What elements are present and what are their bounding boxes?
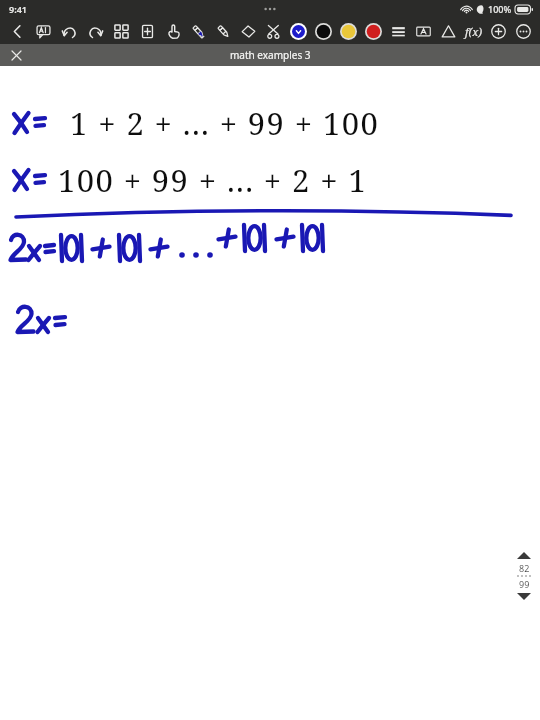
- button[interactable]: More options: [511, 18, 536, 44]
- button[interactable]: Page grid: [108, 18, 134, 44]
- button[interactable]: Yellow colour: [336, 18, 361, 44]
- button[interactable]: Red colour: [361, 18, 386, 44]
- button[interactable]: Math tools: [461, 18, 486, 44]
- staticText: 99: [519, 578, 530, 590]
- button[interactable]: Stroke width: [386, 18, 411, 44]
- button[interactable]: Close note: [0, 44, 32, 66]
- staticText: 82: [519, 562, 530, 574]
- button[interactable]: Eraser: [236, 18, 261, 44]
- staticText: math examples 3: [230, 48, 311, 62]
- button[interactable]: Blue colour: [286, 18, 311, 44]
- button[interactable]: Pointer: [160, 18, 186, 44]
- button[interactable]: Add: [486, 18, 511, 44]
- staticText: f(x): [465, 24, 483, 39]
- button[interactable]: Pen: [186, 18, 211, 44]
- button[interactable]: Lasso select: [261, 18, 286, 44]
- button[interactable]: Back: [4, 18, 30, 44]
- button[interactable]: Shapes: [436, 18, 461, 44]
- button[interactable]: Highlighter: [211, 18, 236, 44]
- staticText: 100 + 99 + ... + 2 + 1: [58, 159, 368, 201]
- button[interactable]: Insert page: [134, 18, 160, 44]
- button[interactable]: AI assistant: [30, 18, 56, 44]
- button[interactable]: Page 82 of 99: [512, 552, 536, 600]
- staticText: 100%: [488, 3, 512, 15]
- button[interactable]: Black colour: [311, 18, 336, 44]
- button[interactable]: Undo: [56, 18, 82, 44]
- staticText: 9:41: [9, 3, 27, 15]
- button[interactable]: Text box: [411, 18, 436, 44]
- staticText: 1 + 2 + ... + 99 + 100: [70, 102, 380, 144]
- button[interactable]: Redo: [82, 18, 108, 44]
